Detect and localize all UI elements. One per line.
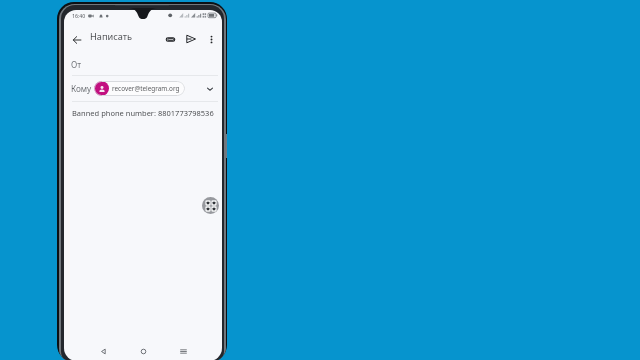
button[interactable]: Attach file [160, 29, 180, 49]
staticText: Кому [71, 83, 92, 94]
button[interactable]: Back [94, 342, 112, 360]
button[interactable]: Recent apps [174, 342, 192, 360]
button[interactable]: Expand recipients [202, 81, 218, 97]
staticText: Написать [90, 30, 133, 43]
button[interactable]: Home [134, 342, 152, 360]
staticText: 16:40 [72, 12, 86, 19]
staticText: recover@telegram.org [112, 84, 180, 93]
staticText: От [71, 59, 82, 70]
button[interactable]: Send [181, 29, 201, 49]
button[interactable]: recover@telegram.org [94, 81, 185, 96]
staticText: Banned phone number: 8801773798536 [72, 108, 214, 118]
button[interactable]: More options [202, 30, 220, 48]
button[interactable]: Back [66, 29, 87, 50]
button[interactable]: Quick settings [202, 197, 219, 214]
